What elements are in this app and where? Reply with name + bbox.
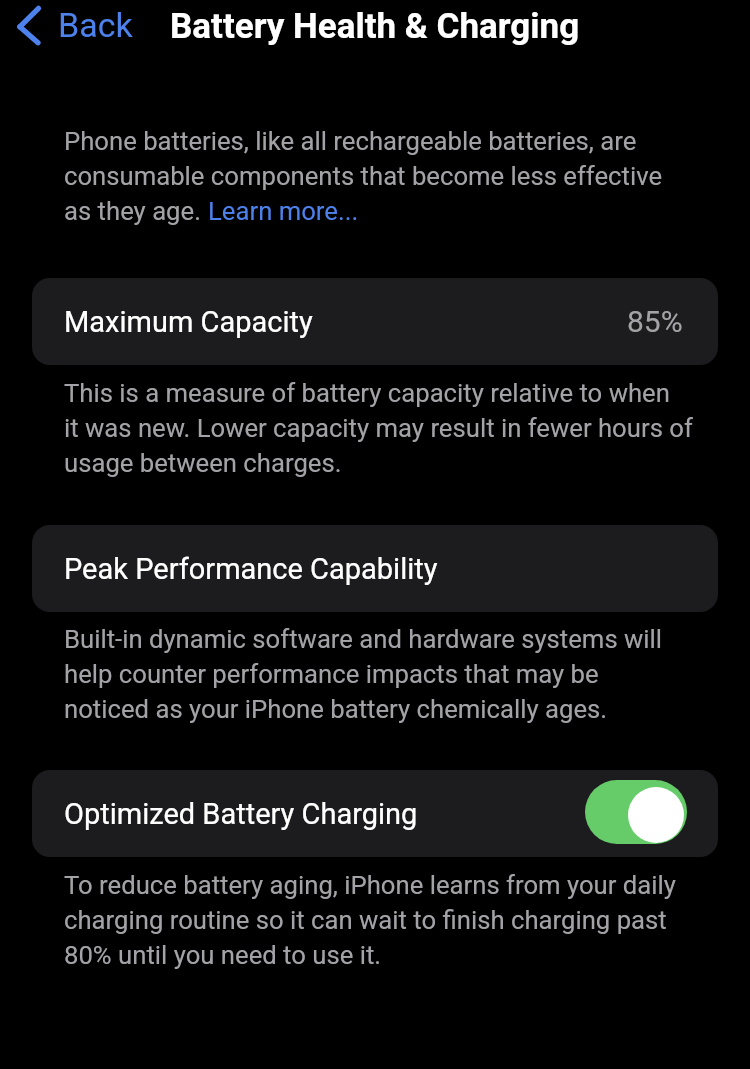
staticText: This is a measure of battery capacity re… <box>64 374 734 479</box>
button[interactable]: Maximum Capacity <box>32 278 718 365</box>
button[interactable]: Learn more... <box>206 189 361 230</box>
staticText: Back <box>58 5 133 45</box>
staticText: 85% <box>627 304 683 339</box>
staticText: Learn more... <box>208 192 359 227</box>
staticText: Built-in dynamic software and hardware s… <box>64 620 734 725</box>
staticText: Optimized Battery Charging <box>64 797 418 831</box>
staticText: Phone batteries, like all rechargeable b… <box>64 122 734 227</box>
button[interactable]: Optimized Battery Charging, on <box>585 780 687 844</box>
staticText: To reduce battery aging, iPhone learns f… <box>64 866 734 971</box>
button[interactable]: Peak Performance Capability <box>32 525 718 612</box>
button[interactable]: Back <box>8 0 138 54</box>
staticText: Peak Performance Capability <box>64 552 438 586</box>
staticText: Battery Health & Charging <box>170 6 580 47</box>
button[interactable]: Optimized Battery Charging <box>32 770 718 857</box>
staticText: Maximum Capacity <box>64 305 313 339</box>
